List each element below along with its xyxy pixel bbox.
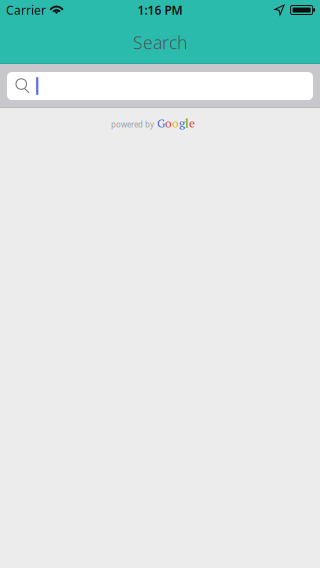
staticText: G	[157, 115, 165, 131]
staticText: Carrier	[6, 2, 46, 18]
staticText: g	[179, 115, 185, 131]
staticText: 1:16 PM	[137, 2, 182, 18]
staticText: o	[172, 115, 179, 131]
staticText: o	[165, 115, 172, 131]
staticText: powered by	[111, 119, 154, 130]
staticText: Search	[133, 29, 187, 55]
staticText: e	[189, 115, 195, 131]
button[interactable]	[0, 64, 320, 108]
staticText: l	[185, 115, 189, 131]
